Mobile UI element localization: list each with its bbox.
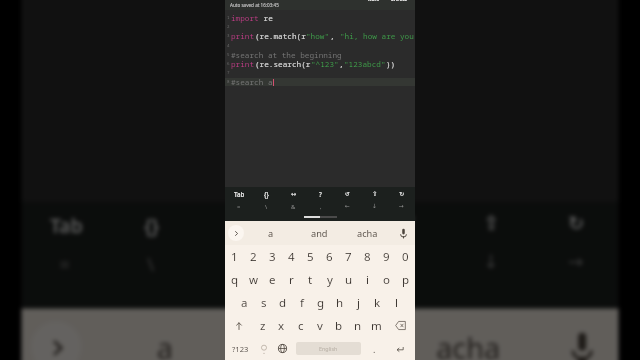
button[interactable]: ←: [334, 200, 361, 213]
staticText: &: [291, 203, 296, 211]
button[interactable]: ,: [307, 200, 334, 213]
button[interactable]: b: [329, 314, 348, 337]
staticText: n: [354, 318, 362, 334]
button[interactable]: RUN: [366, 0, 382, 3]
button[interactable]: ,: [279, 243, 364, 284]
button[interactable]: a: [234, 291, 254, 314]
button[interactable]: 8: [358, 245, 377, 268]
button[interactable]: 5: [301, 245, 320, 268]
button[interactable]: ↺: [334, 187, 361, 200]
button[interactable]: g: [311, 291, 330, 314]
button[interactable]: y: [320, 268, 339, 291]
staticText: \: [147, 252, 157, 277]
button[interactable]: &: [280, 200, 307, 213]
button[interactable]: z: [253, 314, 272, 337]
button[interactable]: acha: [392, 309, 543, 360]
button[interactable]: Expand toolbar: [22, 309, 91, 360]
staticText: ↔: [291, 190, 297, 197]
staticText: w: [249, 272, 259, 288]
button[interactable]: x: [272, 314, 291, 337]
button[interactable]: 0: [396, 245, 415, 268]
staticText: 1: [227, 15, 230, 21]
button[interactable]: ?: [307, 187, 334, 200]
button[interactable]: a: [91, 309, 241, 360]
button[interactable]: ↔: [280, 187, 307, 200]
button[interactable]: t: [301, 268, 320, 291]
button[interactable]: SHARE: [389, 0, 410, 3]
button[interactable]: ↓: [361, 200, 388, 213]
button[interactable]: p: [396, 268, 415, 291]
button[interactable]: u: [339, 268, 358, 291]
button[interactable]: q: [225, 268, 244, 291]
button[interactable]: e: [263, 268, 282, 291]
button[interactable]: m: [367, 314, 386, 337]
button[interactable]: Emoji: [255, 337, 272, 360]
button[interactable]: Voice input: [391, 221, 415, 245]
button[interactable]: ⇧: [449, 202, 533, 243]
staticText: ↺: [345, 190, 351, 197]
button[interactable]: Symbols: [225, 337, 255, 360]
button[interactable]: \: [253, 200, 280, 213]
button[interactable]: d: [273, 291, 292, 314]
button[interactable]: ↔: [194, 202, 279, 243]
button[interactable]: Backspace: [386, 314, 415, 337]
button[interactable]: 9: [377, 245, 396, 268]
button[interactable]: Expand toolbar: [225, 221, 247, 245]
button[interactable]: Tab: [225, 187, 253, 200]
staticText: acha: [436, 328, 502, 360]
button[interactable]: =: [225, 200, 253, 213]
button[interactable]: 7: [339, 245, 358, 268]
button[interactable]: l: [387, 291, 406, 314]
button[interactable]: 3: [263, 245, 282, 268]
button[interactable]: .: [365, 337, 384, 360]
staticText: ↺: [398, 211, 417, 233]
button[interactable]: ↺: [364, 202, 449, 243]
button[interactable]: 2: [244, 245, 263, 268]
button[interactable]: and: [241, 309, 392, 360]
button[interactable]: n: [348, 314, 367, 337]
button[interactable]: ⇧: [361, 187, 388, 200]
button[interactable]: r: [282, 268, 301, 291]
button[interactable]: s: [254, 291, 273, 314]
button[interactable]: {}: [253, 187, 280, 200]
button[interactable]: a: [247, 221, 295, 245]
button[interactable]: h: [330, 291, 349, 314]
button[interactable]: ?: [279, 202, 364, 243]
button[interactable]: 4: [282, 245, 301, 268]
staticText: ↻: [399, 190, 405, 197]
button[interactable]: c: [291, 314, 310, 337]
button[interactable]: English: [296, 342, 361, 355]
button[interactable]: o: [377, 268, 396, 291]
button[interactable]: Tab: [22, 202, 110, 243]
staticText: and: [292, 328, 345, 360]
button[interactable]: 1: [225, 245, 244, 268]
button[interactable]: j: [349, 291, 368, 314]
button[interactable]: acha: [343, 221, 391, 245]
button[interactable]: →: [388, 200, 415, 213]
button[interactable]: i: [358, 268, 377, 291]
button[interactable]: f: [292, 291, 311, 314]
button[interactable]: Voice input: [543, 309, 618, 360]
button[interactable]: k: [368, 291, 387, 314]
button[interactable]: Shift: [225, 314, 253, 337]
button[interactable]: ↻: [533, 202, 618, 243]
button[interactable]: ←: [364, 243, 449, 284]
staticText: r: [289, 272, 294, 288]
button[interactable]: v: [310, 314, 329, 337]
button[interactable]: w: [244, 268, 263, 291]
staticText: 6: [326, 249, 333, 265]
button[interactable]: &: [194, 243, 279, 284]
button[interactable]: and: [295, 221, 343, 245]
button[interactable]: ↻: [388, 187, 415, 200]
button[interactable]: Change language: [272, 337, 292, 360]
button[interactable]: {}: [110, 202, 194, 243]
staticText: ⇧: [483, 211, 502, 233]
button[interactable]: Enter: [384, 337, 415, 360]
staticText: 6: [227, 61, 230, 67]
button[interactable]: 6: [320, 245, 339, 268]
